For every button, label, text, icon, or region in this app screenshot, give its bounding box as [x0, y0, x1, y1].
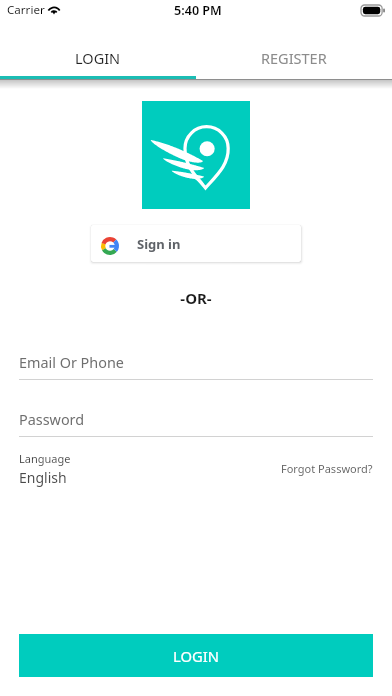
staticText: REGISTER — [261, 48, 327, 68]
staticText: Forgot Password? — [281, 461, 373, 476]
button[interactable]: LOGIN — [0, 30, 196, 76]
button[interactable]: Language — [19, 451, 71, 487]
staticText: LOGIN — [75, 48, 121, 68]
button[interactable]: Forgot Password? — [281, 461, 373, 476]
staticText: Password — [19, 410, 85, 430]
staticText: LOGIN — [173, 646, 220, 666]
button[interactable]: Password — [19, 407, 373, 437]
staticText: 5:40 PM — [174, 2, 222, 19]
button[interactable]: LOGIN — [19, 634, 373, 677]
staticText: English — [19, 468, 67, 487]
staticText: Carrier — [7, 2, 45, 18]
staticText: Email Or Phone — [19, 353, 124, 373]
staticText: -OR- — [0, 288, 392, 308]
staticText: Language — [19, 451, 71, 466]
button[interactable]: REGISTER — [196, 30, 392, 76]
button[interactable]: Sign in — [91, 225, 301, 262]
button[interactable]: Email Or Phone — [19, 350, 373, 380]
staticText: Sign in — [137, 235, 181, 253]
